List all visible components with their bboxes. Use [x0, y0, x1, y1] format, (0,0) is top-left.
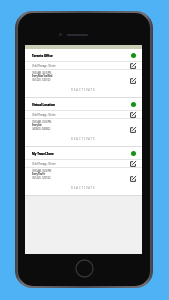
- staticText: My Travel Zone: [32, 152, 54, 156]
- staticText: DEACTIVATE: [71, 88, 96, 92]
- staticText: Every Sat: [32, 123, 42, 127]
- staticText: My Travel Zone: [32, 152, 54, 156]
- staticText: 09:30 AM - 05:00 PM: [32, 120, 52, 124]
- staticText: Child Therapy - 50 min: [32, 162, 56, 166]
- staticText: 09:30 AM - 05:00 PM: [32, 169, 52, 173]
- button[interactable]: Active: [130, 150, 136, 156]
- staticText: Every Mon Tue Wed: [32, 74, 53, 78]
- staticText: DEACTIVATE: [71, 137, 96, 141]
- staticText: DEACTIVATE: [71, 186, 96, 190]
- staticText: Child Therapy - 50 min: [32, 64, 56, 68]
- staticText: 09:30 AM - 00:30 PM: [32, 71, 52, 75]
- staticText: 05/14/20 - 12/01/20: [32, 78, 51, 82]
- button[interactable]: Edit: [130, 127, 136, 133]
- button[interactable]: Toronto Office: [25, 49, 142, 98]
- button[interactable]: Edit: [130, 63, 136, 69]
- staticText: My Travel Zone: [32, 152, 54, 156]
- staticText: Toronto Office: [32, 54, 53, 58]
- button[interactable]: Edit: [130, 161, 136, 167]
- button[interactable]: DEACTIVATE: [25, 136, 142, 146]
- staticText: 04/08/20 - 04/08/22: [32, 127, 51, 131]
- staticText: Virtual Location: [32, 103, 55, 107]
- staticText: Virtual Location: [32, 103, 55, 107]
- staticText: Toronto Office: [32, 54, 53, 58]
- button[interactable]: Virtual Location: [25, 98, 142, 147]
- button[interactable]: Active: [130, 101, 136, 107]
- staticText: Virtual Location: [32, 103, 55, 107]
- button[interactable]: Active: [130, 52, 136, 58]
- button[interactable]: DEACTIVATE: [25, 87, 142, 97]
- button[interactable]: My Travel Zone: [25, 147, 142, 196]
- staticText: Every Thu Fri: [32, 172, 45, 176]
- staticText: 05/14/20 - 12/01/20: [32, 176, 51, 180]
- button[interactable]: Edit: [130, 112, 136, 118]
- button[interactable]: Edit: [130, 78, 136, 84]
- button[interactable]: Edit: [130, 176, 136, 182]
- staticText: Child Therapy - 50 min: [32, 113, 56, 117]
- button[interactable]: DEACTIVATE: [25, 185, 142, 195]
- staticText: Toronto Office: [32, 54, 53, 58]
